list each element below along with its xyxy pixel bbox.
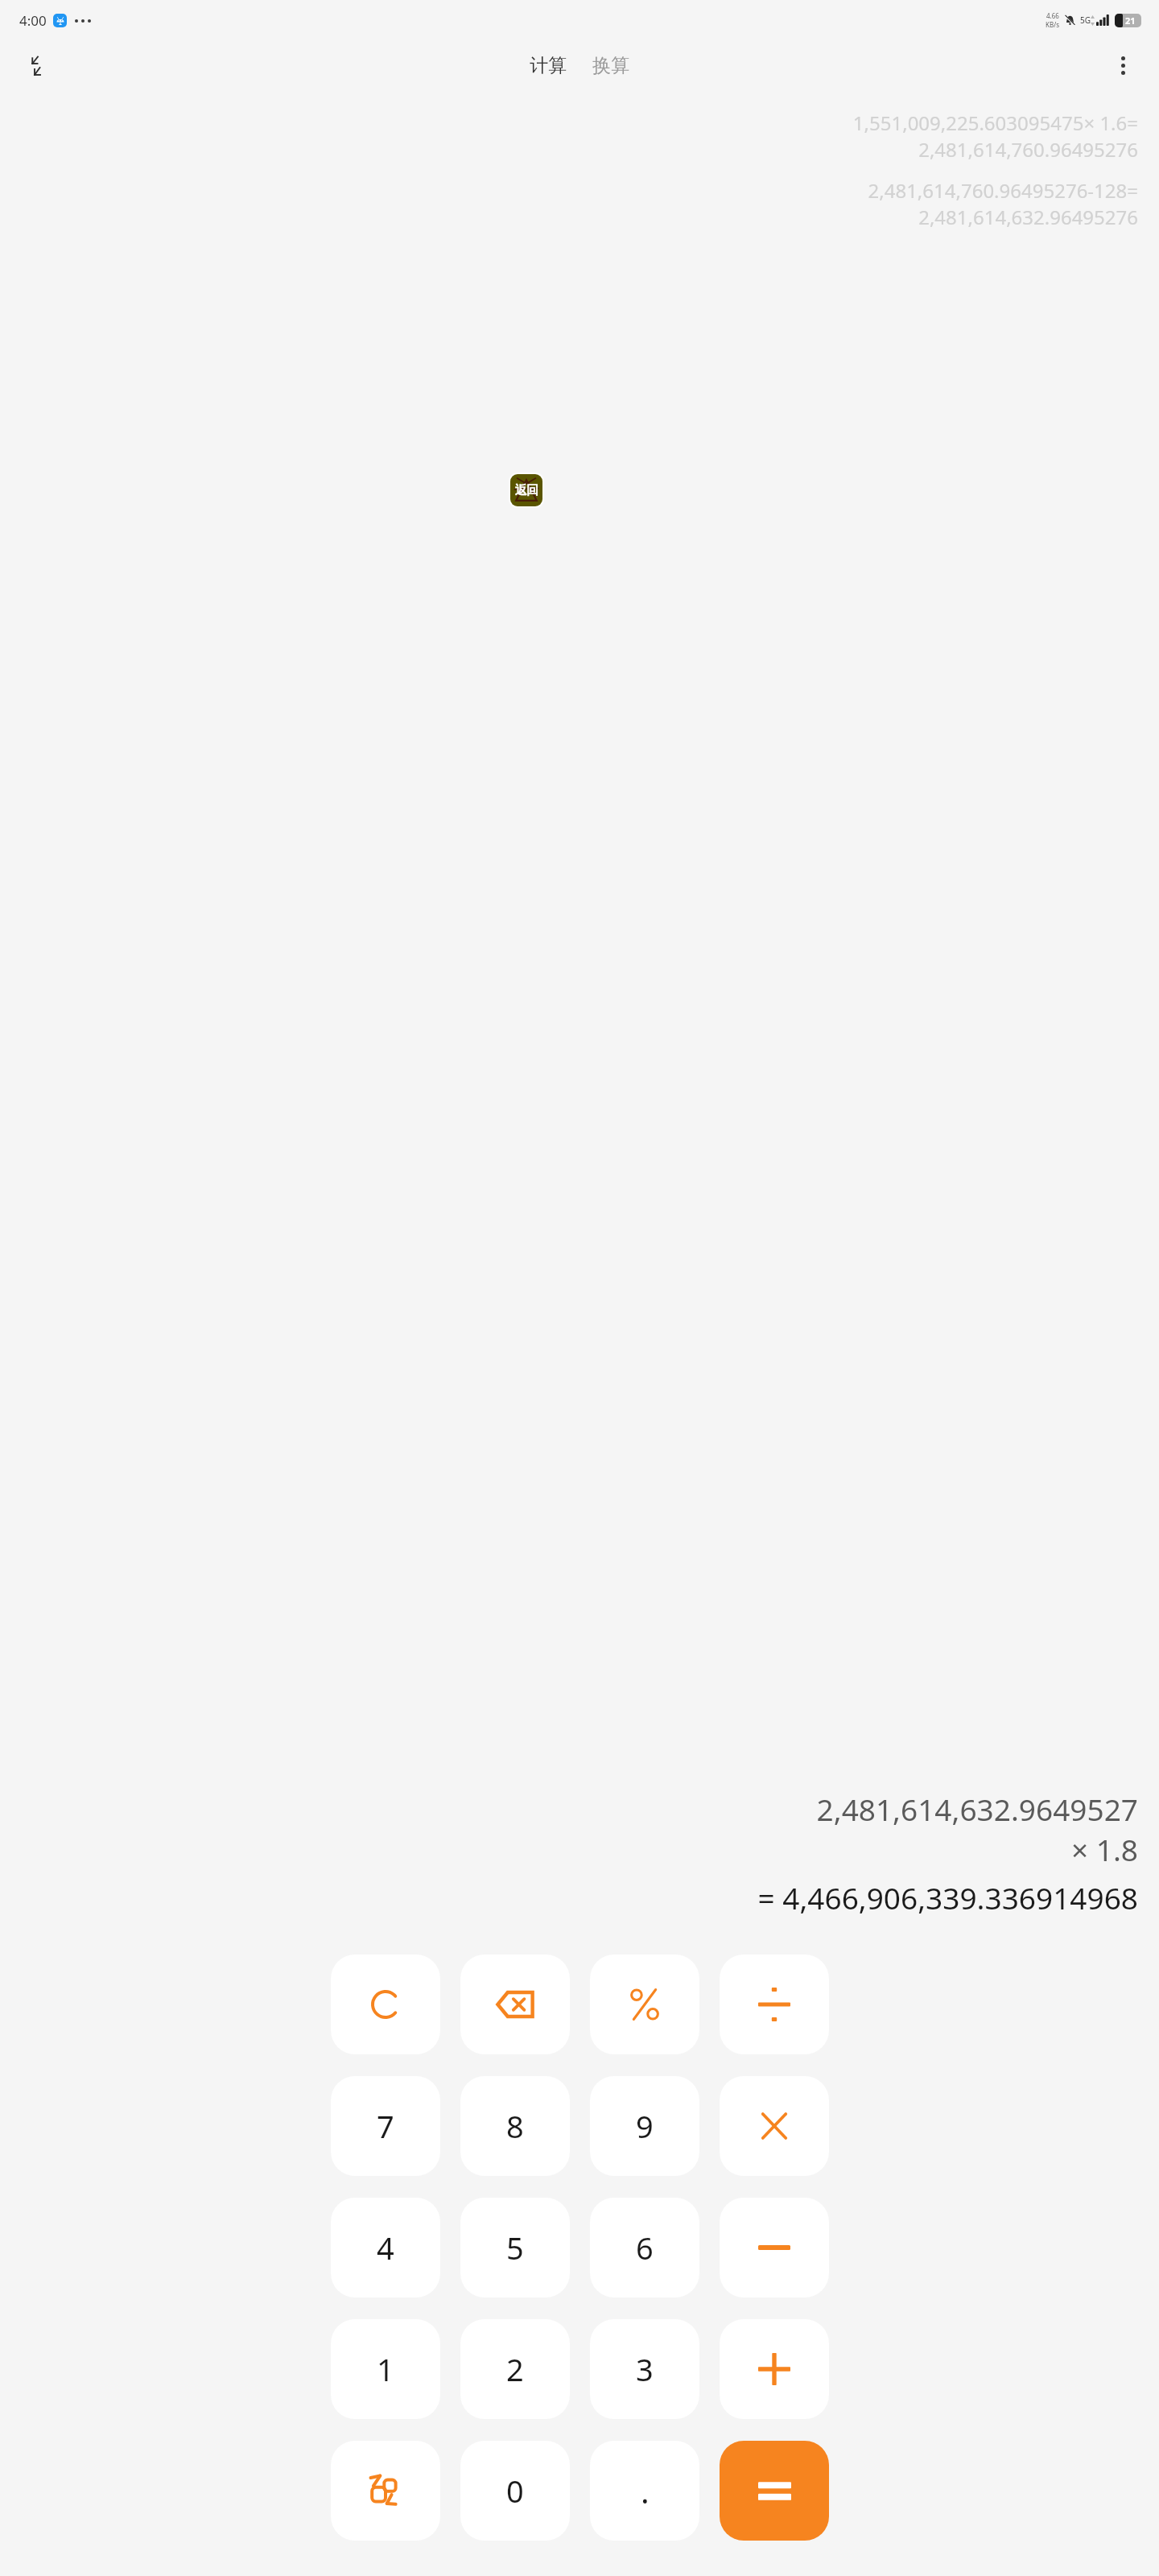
button[interactable]: 乘 — [720, 2076, 829, 2176]
staticText: 2,481,614,760.96495276-128= — [29, 177, 1138, 204]
staticText: 7 — [377, 2105, 394, 2147]
staticText: KB/s — [1046, 20, 1059, 29]
staticText: 21 — [1125, 14, 1136, 27]
button[interactable]: 8 — [460, 2076, 570, 2176]
button[interactable]: 9 — [590, 2076, 699, 2176]
button[interactable]: 返回 — [510, 474, 542, 506]
staticText: 3 — [636, 2348, 654, 2390]
staticText: 9 — [636, 2105, 654, 2147]
button[interactable]: 0 — [460, 2441, 570, 2541]
staticText: × 1.8 — [21, 1829, 1138, 1869]
staticText: 4:00 — [19, 11, 47, 30]
button[interactable]: 除 — [720, 1955, 829, 2054]
button[interactable]: 收起 — [14, 44, 56, 86]
staticText: . — [641, 2469, 650, 2512]
staticText: 2,481,614,632.96495276 — [29, 204, 1138, 230]
staticText: 8 — [506, 2105, 524, 2147]
staticText: 4 — [377, 2227, 394, 2268]
staticText: 2,481,614,760.96495276 — [29, 136, 1138, 163]
staticText: 计算 — [530, 54, 567, 77]
staticText: 2 — [506, 2348, 524, 2390]
button[interactable]: 2 — [460, 2319, 570, 2419]
staticText: 1 — [377, 2348, 394, 2390]
staticText: 6 — [636, 2227, 654, 2268]
staticText: 5G — [1080, 14, 1091, 26]
staticText: 0 — [506, 2470, 524, 2512]
staticText: 4.66 — [1046, 11, 1059, 20]
staticText: 5 — [506, 2227, 524, 2268]
staticText: 1,551,009,225.603095475× 1.6= — [29, 109, 1138, 136]
button[interactable]: 7 — [331, 2076, 440, 2176]
button[interactable]: 计算 — [522, 49, 575, 82]
button[interactable]: 6 — [590, 2198, 699, 2297]
button[interactable]: 等于 — [720, 2441, 829, 2541]
button[interactable]: 更多选项 — [1104, 47, 1141, 84]
button[interactable]: . — [590, 2441, 699, 2541]
button[interactable]: 减 — [720, 2198, 829, 2297]
staticText: 换算 — [592, 54, 629, 77]
button[interactable]: 加 — [720, 2319, 829, 2419]
staticText: 返回 — [515, 483, 538, 498]
button[interactable]: 3 — [590, 2319, 699, 2419]
staticText: 2,481,614,632.9649527 — [21, 1789, 1138, 1829]
button[interactable]: 换算 — [584, 49, 637, 82]
button[interactable]: 清除 — [331, 1955, 440, 2054]
staticText: = 4,466,906,339.336914968 — [21, 1877, 1138, 1918]
button[interactable]: 1 — [331, 2319, 440, 2419]
button[interactable]: 4 — [331, 2198, 440, 2297]
button[interactable]: 科学计算 — [331, 2441, 440, 2541]
button[interactable]: 退格 — [460, 1955, 570, 2054]
button[interactable]: 百分号 — [590, 1955, 699, 2054]
button[interactable]: 5 — [460, 2198, 570, 2297]
